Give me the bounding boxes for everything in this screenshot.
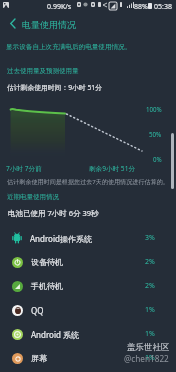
button[interactable]: 手机待机 (0, 274, 176, 298)
staticText: 电池已使用 7小时 6分 39秒 (8, 208, 99, 218)
staticText: 7小时 7分前 (6, 164, 42, 173)
staticText: Android操作系统 (30, 233, 92, 244)
staticText: 手机待机 (31, 281, 63, 291)
staticText: 2% (145, 257, 155, 267)
staticText: 1% (145, 353, 155, 363)
staticText: 盖乐世社区 (127, 342, 170, 353)
button[interactable]: 设备待机 (0, 250, 176, 274)
staticText: 过去使用量及预测使用量 (7, 67, 79, 75)
staticText: 估计剩余使用时间是根据您过去7天的使用情况进行估算的。 (7, 177, 169, 185)
button[interactable]: Back (4, 15, 21, 32)
staticText: 88% (134, 2, 148, 12)
staticText: 电量使用情况 (22, 19, 76, 30)
staticText: 屏幕 (31, 353, 47, 363)
staticText: 0% (153, 155, 162, 163)
staticText: 100% (146, 105, 162, 113)
staticText: 剩余9小时 51分 (89, 164, 135, 173)
button[interactable]: 屏幕 (0, 346, 176, 370)
staticText: 设备待机 (31, 257, 63, 267)
staticText: 0.99K/s (47, 2, 72, 12)
staticText: 近期电量使用情况 (7, 193, 59, 201)
staticText: 显示设备自上次充满电后的电量使用情况。 (6, 43, 132, 51)
staticText: 1% (145, 305, 155, 315)
button[interactable]: QQ (0, 298, 176, 322)
staticText: 05:38 (154, 2, 172, 12)
button[interactable]: Android 系统 (0, 322, 176, 346)
staticText: 估计剩余使用时间：9小时 51分 (7, 83, 102, 92)
button[interactable]: Android操作系统 (0, 226, 176, 250)
staticText: 1% (145, 329, 155, 339)
staticText: 2% (145, 281, 155, 291)
staticText: @chen1822 (124, 353, 169, 364)
staticText: 3% (145, 233, 155, 243)
staticText: Android 系统 (31, 329, 80, 340)
staticText: 50% (149, 130, 162, 138)
staticText: QQ (31, 305, 44, 316)
